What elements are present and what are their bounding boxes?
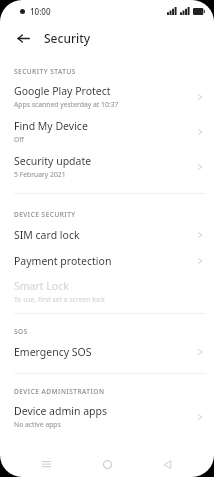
staticText: 5 February 2021: [14, 170, 66, 179]
button[interactable]: Google Play Protect: [0, 79, 214, 114]
button[interactable]: Find My Device: [0, 114, 214, 149]
button[interactable]: Device admin apps: [0, 399, 214, 434]
button[interactable]: Back: [12, 27, 34, 49]
staticText: Apps scanned yesterday at 10:37: [14, 100, 119, 109]
button: Smart Lock: [0, 274, 214, 309]
staticText: SECURITY STATUS: [14, 67, 76, 76]
staticText: Security update: [14, 154, 92, 168]
button[interactable]: Payment protection: [0, 248, 214, 274]
button[interactable]: Emergency SOS: [0, 339, 214, 365]
button[interactable]: Security update: [0, 149, 214, 184]
staticText: Find My Device: [14, 119, 88, 133]
staticText: SIM card lock: [14, 228, 80, 242]
button[interactable]: Recent apps: [31, 451, 61, 477]
staticText: Emergency SOS: [14, 345, 92, 359]
staticText: 10:00: [30, 6, 51, 17]
staticText: SOS: [14, 327, 28, 336]
staticText: Smart Lock: [14, 279, 69, 293]
staticText: Payment protection: [14, 254, 112, 268]
staticText: To use, first set a screen lock: [14, 295, 105, 304]
staticText: Off: [14, 135, 24, 144]
staticText: Security: [44, 30, 91, 46]
staticText: DEVICE SECURITY: [14, 210, 76, 219]
button[interactable]: Home: [92, 451, 122, 477]
staticText: No active apps: [14, 420, 61, 429]
staticText: Google Play Protect: [14, 84, 111, 98]
button[interactable]: Back: [153, 451, 183, 477]
button[interactable]: SIM card lock: [0, 222, 214, 248]
staticText: Device admin apps: [14, 404, 108, 418]
staticText: DEVICE ADMINISTRATION: [14, 387, 105, 396]
